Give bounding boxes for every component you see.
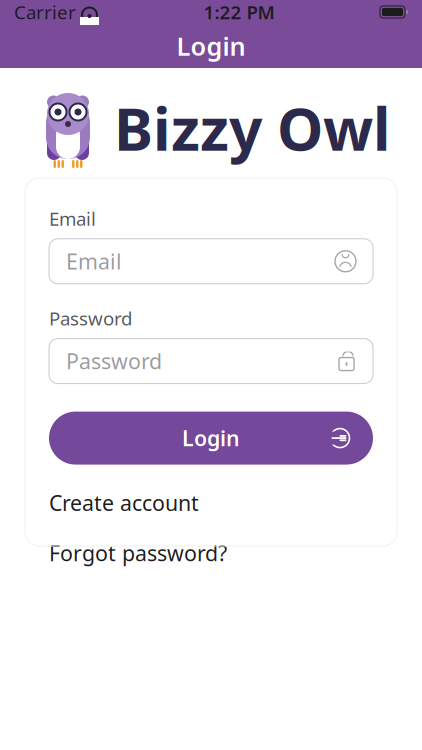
staticText: Email (49, 206, 96, 231)
button[interactable]: Forgot password? (49, 533, 373, 573)
button[interactable]: Login (49, 412, 373, 465)
button[interactable]: Create account (49, 483, 373, 523)
staticText: Password (66, 347, 162, 375)
staticText: Create account (49, 489, 199, 517)
staticText: Carrier (14, 0, 76, 24)
staticText: Login (182, 424, 240, 452)
staticText: Email (66, 247, 122, 275)
staticText: 1:22 PM (203, 0, 274, 24)
staticText: Password (49, 306, 132, 331)
staticText: Forgot password? (49, 539, 227, 567)
staticText: Login (176, 29, 245, 63)
staticText: Bizzy Owl (114, 89, 390, 167)
